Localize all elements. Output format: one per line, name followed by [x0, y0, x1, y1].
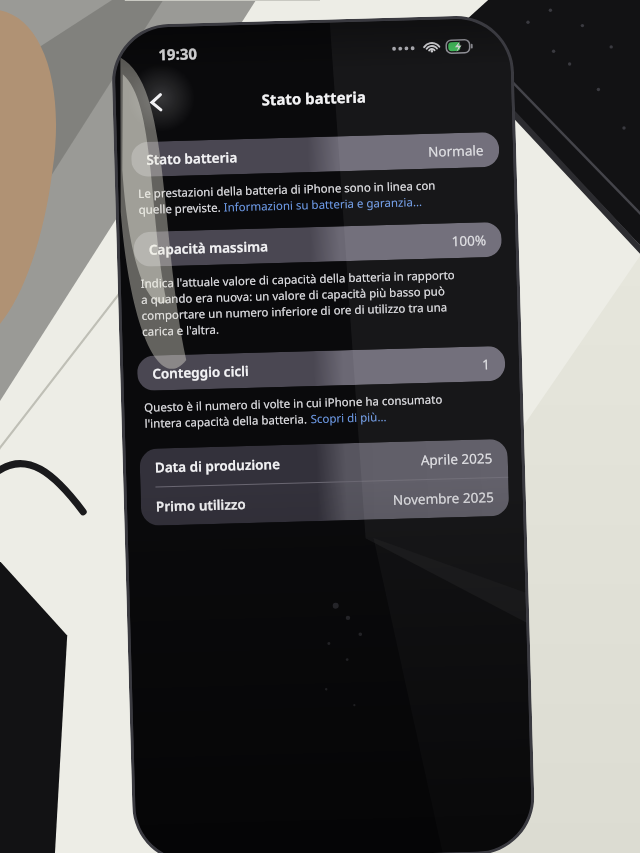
staticText: 1: [482, 355, 490, 373]
staticText: carica e l'altra.: [142, 322, 219, 340]
staticText: Capacità massima: [148, 237, 269, 259]
staticText: 100%: [451, 231, 487, 250]
staticText: 19:30: [158, 43, 198, 64]
staticText: Indica l'attuale valore di capacità dell…: [140, 267, 456, 292]
staticText: quelle previste.: [138, 200, 224, 218]
button[interactable]: Capacità massima: [133, 222, 502, 267]
staticText: l'intera capacità della batteria.: [144, 411, 311, 432]
button[interactable]: Primo utilizzo: [140, 478, 509, 526]
staticText: Stato batteria: [146, 148, 237, 169]
button[interactable]: Data di produzione: [139, 439, 508, 487]
staticText: Conteggio cicli: [152, 362, 249, 383]
staticText: Aprile 2025: [420, 449, 493, 469]
staticText: Normale: [428, 141, 484, 161]
staticText: a quando era nuova: un valore di capacit…: [141, 283, 445, 308]
button[interactable]: Indietro: [139, 85, 174, 120]
staticText: Novembre 2025: [393, 488, 494, 509]
staticText: Primo utilizzo: [156, 495, 246, 516]
staticText: Questo è il numero di volte in cui iPhon…: [144, 391, 443, 416]
button[interactable]: Informazioni su batteria e garanzia...: [223, 194, 423, 216]
button[interactable]: Scopri di più...: [310, 409, 387, 427]
button[interactable]: Stato batteria: [131, 132, 500, 177]
staticText: comportare un numero inferiore di ore di…: [141, 299, 448, 324]
staticText: Stato batteria: [261, 86, 367, 109]
button[interactable]: Conteggio cicli: [137, 346, 506, 391]
staticText: Data di produzione: [155, 455, 281, 477]
staticText: Le prestazioni della batteria di iPhone …: [138, 178, 436, 202]
